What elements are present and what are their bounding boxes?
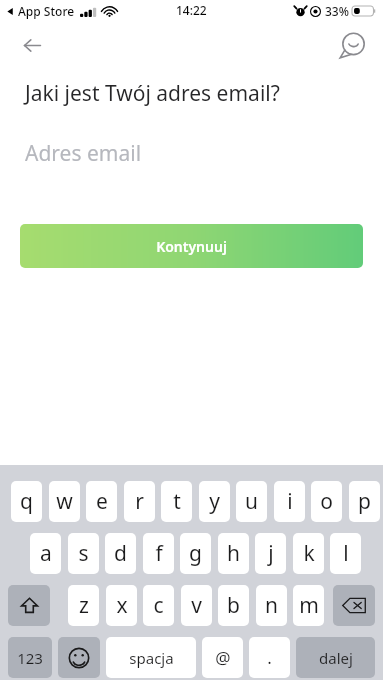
button[interactable]: Back — [10, 23, 54, 67]
button[interactable]: w — [49, 481, 80, 522]
staticText: u — [245, 487, 258, 516]
staticText: q — [20, 487, 33, 516]
button[interactable]: a — [30, 533, 61, 574]
button[interactable]: Emoji — [58, 637, 100, 678]
staticText: Jaki jest Twój adres email? — [25, 79, 280, 108]
staticText: k — [303, 539, 315, 568]
staticText: n — [265, 591, 278, 620]
staticText: Kontynuuj — [156, 237, 227, 256]
staticText: l — [343, 539, 349, 568]
button[interactable]: . — [249, 637, 290, 678]
button[interactable]: l — [330, 533, 361, 574]
button[interactable]: Support chat — [331, 23, 375, 67]
staticText: dalej — [319, 648, 353, 668]
button[interactable]: dalej — [296, 637, 375, 678]
button[interactable]: m — [293, 585, 324, 626]
staticText: 33% — [325, 3, 349, 19]
button[interactable]: h — [218, 533, 249, 574]
button[interactable]: e — [86, 481, 117, 522]
staticText: s — [78, 539, 89, 568]
button[interactable]: o — [311, 481, 342, 522]
button[interactable]: q — [11, 481, 42, 522]
button[interactable]: x — [106, 585, 137, 626]
staticText: spacja — [129, 648, 174, 668]
staticText: x — [116, 591, 128, 620]
button[interactable]: y — [199, 481, 230, 522]
staticText: g — [189, 539, 202, 568]
button[interactable]: f — [143, 533, 174, 574]
button[interactable]: p — [349, 481, 380, 522]
button[interactable]: k — [293, 533, 324, 574]
button[interactable]: Backspace — [333, 585, 375, 626]
button[interactable]: r — [124, 481, 155, 522]
staticText: a — [40, 539, 52, 568]
button[interactable]: v — [181, 585, 212, 626]
staticText: r — [135, 487, 144, 516]
staticText: Adres email — [25, 139, 142, 168]
staticText: . — [267, 646, 272, 669]
staticText: @ — [215, 646, 231, 669]
staticText: j — [268, 539, 274, 568]
staticText: App Store — [18, 3, 75, 19]
staticText: i — [287, 487, 293, 516]
staticText: f — [155, 539, 163, 568]
staticText: o — [320, 487, 333, 516]
button[interactable]: d — [105, 533, 136, 574]
staticText: m — [299, 591, 319, 620]
staticText: w — [56, 487, 73, 516]
staticText: z — [79, 591, 89, 620]
button[interactable]: i — [274, 481, 305, 522]
button[interactable]: g — [180, 533, 211, 574]
button[interactable]: @ — [202, 637, 243, 678]
staticText: 14:22 — [176, 2, 207, 18]
staticText: p — [358, 487, 371, 516]
button[interactable]: Kontynuuj — [20, 224, 363, 268]
staticText: d — [114, 539, 127, 568]
button[interactable]: Shift — [8, 585, 50, 626]
button[interactable]: u — [236, 481, 267, 522]
button[interactable]: spacja — [106, 637, 196, 678]
button[interactable]: t — [161, 481, 192, 522]
button[interactable]: j — [255, 533, 286, 574]
staticText: c — [153, 591, 164, 620]
staticText: b — [227, 591, 240, 620]
staticText: y — [209, 487, 220, 516]
button[interactable]: c — [143, 585, 174, 626]
button[interactable]: n — [256, 585, 287, 626]
staticText: 123 — [17, 648, 43, 668]
button[interactable]: b — [218, 585, 249, 626]
button[interactable]: z — [68, 585, 99, 626]
staticText: e — [96, 487, 108, 516]
staticText: h — [227, 539, 240, 568]
button[interactable]: s — [68, 533, 99, 574]
staticText: t — [173, 487, 181, 516]
button[interactable]: 123 — [8, 637, 52, 678]
staticText: v — [191, 591, 202, 620]
